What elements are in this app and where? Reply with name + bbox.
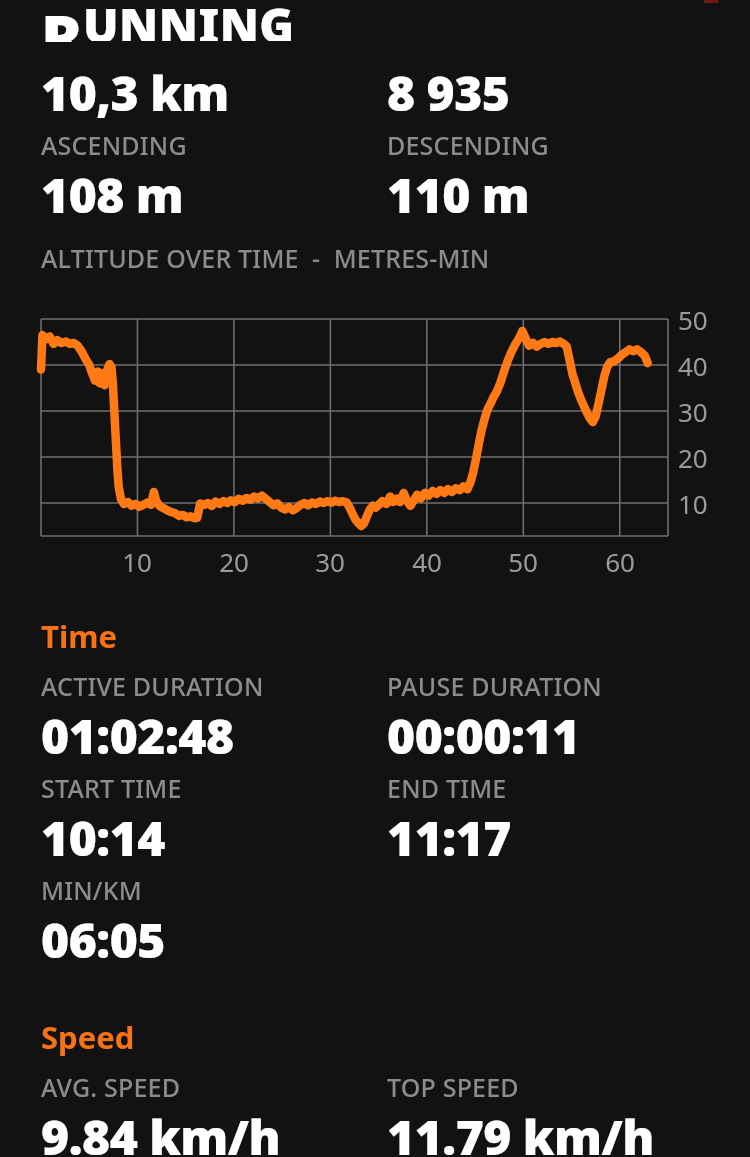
staticText: 20	[678, 440, 708, 475]
other: Altitude over time chart	[41, 289, 730, 569]
staticText: 50	[678, 302, 708, 337]
staticText: 30	[678, 394, 708, 429]
staticText: R	[41, 0, 83, 42]
staticText: 20	[204, 544, 264, 579]
button[interactable]: Speed	[41, 1016, 135, 1058]
staticText: UNNING	[83, 0, 295, 41]
staticText: END TIME	[387, 771, 507, 805]
staticText: 40	[678, 348, 708, 383]
staticText: TOP SPEED	[387, 1070, 519, 1104]
staticText: MIN/KM	[41, 873, 142, 907]
staticText: 9.84 km/h	[41, 1104, 281, 1157]
button[interactable]: Time	[41, 615, 117, 657]
staticText: 60	[590, 544, 650, 579]
staticText: 108 m	[41, 162, 184, 227]
staticText: 30	[300, 544, 360, 579]
staticText: 01:02:48	[41, 703, 234, 768]
staticText: PAUSE DURATION	[387, 669, 602, 703]
staticText: ALTITUDE OVER TIME - METRES-MIN	[41, 241, 490, 275]
staticText: AVG. SPEED	[41, 1070, 181, 1104]
staticText: 00:00:11	[387, 703, 580, 768]
staticText: ASCENDING	[41, 128, 187, 162]
staticText: DESCENDING	[387, 128, 549, 162]
staticText: 10:14	[41, 805, 165, 870]
staticText: 40	[397, 544, 457, 579]
staticText: 10	[107, 544, 167, 579]
staticText: 8 935	[387, 60, 510, 125]
staticText: 11.79 km/h	[387, 1104, 654, 1157]
staticText: 50	[493, 544, 553, 579]
staticText: ACTIVE DURATION	[41, 669, 264, 703]
staticText: 11:17	[387, 805, 511, 870]
staticText: 06:05	[41, 907, 165, 972]
staticText: 10,3 km	[41, 60, 229, 125]
staticText: 110 m	[387, 162, 530, 227]
staticText: 10	[678, 486, 708, 521]
staticText: START TIME	[41, 771, 182, 805]
button[interactable]: R	[41, 0, 295, 42]
